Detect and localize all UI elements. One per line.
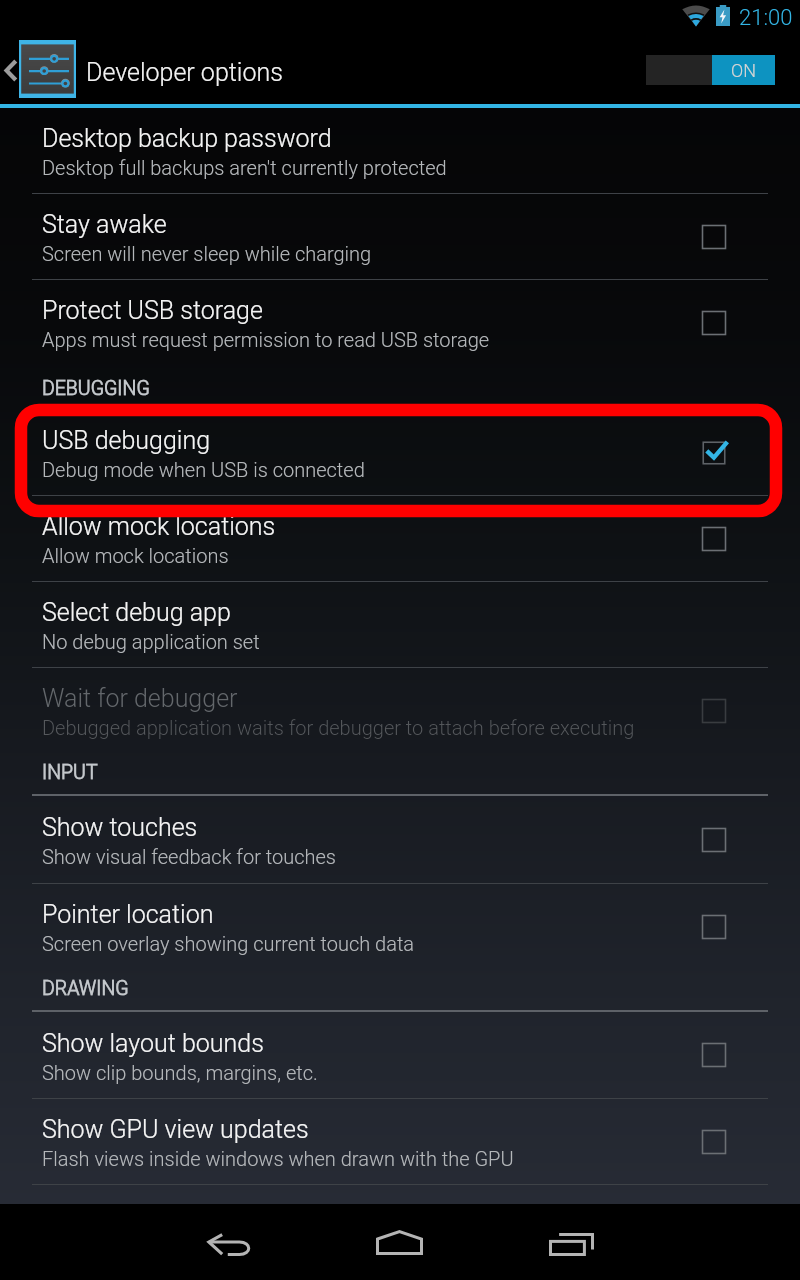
staticText: Stay awake: [42, 210, 167, 239]
button[interactable]: Show layout bounds: [670, 1012, 800, 1098]
staticText: Apps must request permission to read USB…: [42, 328, 490, 351]
button[interactable]: Navigate up: [0, 33, 80, 104]
staticText: Debug mode when USB is connected: [42, 458, 365, 481]
button[interactable]: Show layout bounds: [0, 1012, 800, 1098]
button[interactable]: Show touches: [0, 796, 800, 883]
staticText: ON: [731, 60, 756, 81]
button[interactable]: Allow mock locations: [0, 496, 800, 581]
button[interactable]: Protect USB storage: [670, 280, 800, 365]
staticText: Show clip bounds, margins, etc.: [42, 1061, 318, 1084]
staticText: 21:00: [739, 5, 793, 31]
button[interactable]: Stay awake: [0, 194, 800, 279]
button[interactable]: USB debugging: [0, 410, 800, 495]
button[interactable]: Wait for debugger: [670, 668, 800, 753]
staticText: DRAWING: [42, 977, 129, 1000]
staticText: Show touches: [42, 813, 198, 842]
button[interactable]: Protect USB storage: [0, 280, 800, 365]
button[interactable]: Desktop backup password: [0, 108, 800, 193]
staticText: USB debugging: [42, 426, 211, 455]
staticText: Flash views inside windows when drawn wi…: [42, 1147, 514, 1170]
button[interactable]: Select debug app: [0, 582, 800, 667]
staticText: Allow mock locations: [42, 544, 229, 567]
button[interactable]: Pointer location: [670, 884, 800, 969]
staticText: Pointer location: [42, 900, 214, 929]
button[interactable]: Show GPU view updates: [0, 1099, 800, 1184]
staticText: Select debug app: [42, 598, 231, 627]
staticText: Desktop full backups aren't currently pr…: [42, 156, 447, 179]
button[interactable]: Allow mock locations: [670, 496, 800, 581]
staticText: Protect USB storage: [42, 296, 263, 325]
button[interactable]: Stay awake: [670, 194, 800, 279]
button[interactable]: Show touches: [670, 796, 800, 883]
staticText: Screen will never sleep while charging: [42, 242, 372, 265]
button[interactable]: Home: [350, 1204, 450, 1280]
button[interactable]: Recent apps: [520, 1204, 620, 1280]
staticText: Wait for debugger: [42, 684, 238, 713]
button[interactable]: Back: [179, 1204, 279, 1280]
staticText: Debugged application waits for debugger …: [42, 716, 635, 739]
staticText: INPUT: [42, 761, 98, 784]
button[interactable]: Pointer location: [0, 884, 800, 969]
staticText: No debug application set: [42, 630, 260, 653]
staticText: Allow mock locations: [42, 512, 276, 541]
staticText: Screen overlay showing current touch dat…: [42, 932, 415, 955]
staticText: Desktop backup password: [42, 124, 332, 153]
staticText: DEBUGGING: [42, 377, 150, 400]
staticText: Show layout bounds: [42, 1029, 264, 1058]
staticText: Show GPU view updates: [42, 1115, 309, 1144]
button[interactable]: Wait for debugger: [0, 668, 800, 753]
button[interactable]: Show GPU view updates: [670, 1099, 800, 1184]
staticText: Show visual feedback for touches: [42, 845, 336, 868]
button[interactable]: USB debugging: [670, 410, 800, 495]
button[interactable]: ON: [646, 55, 775, 85]
staticText: Developer options: [86, 58, 283, 87]
